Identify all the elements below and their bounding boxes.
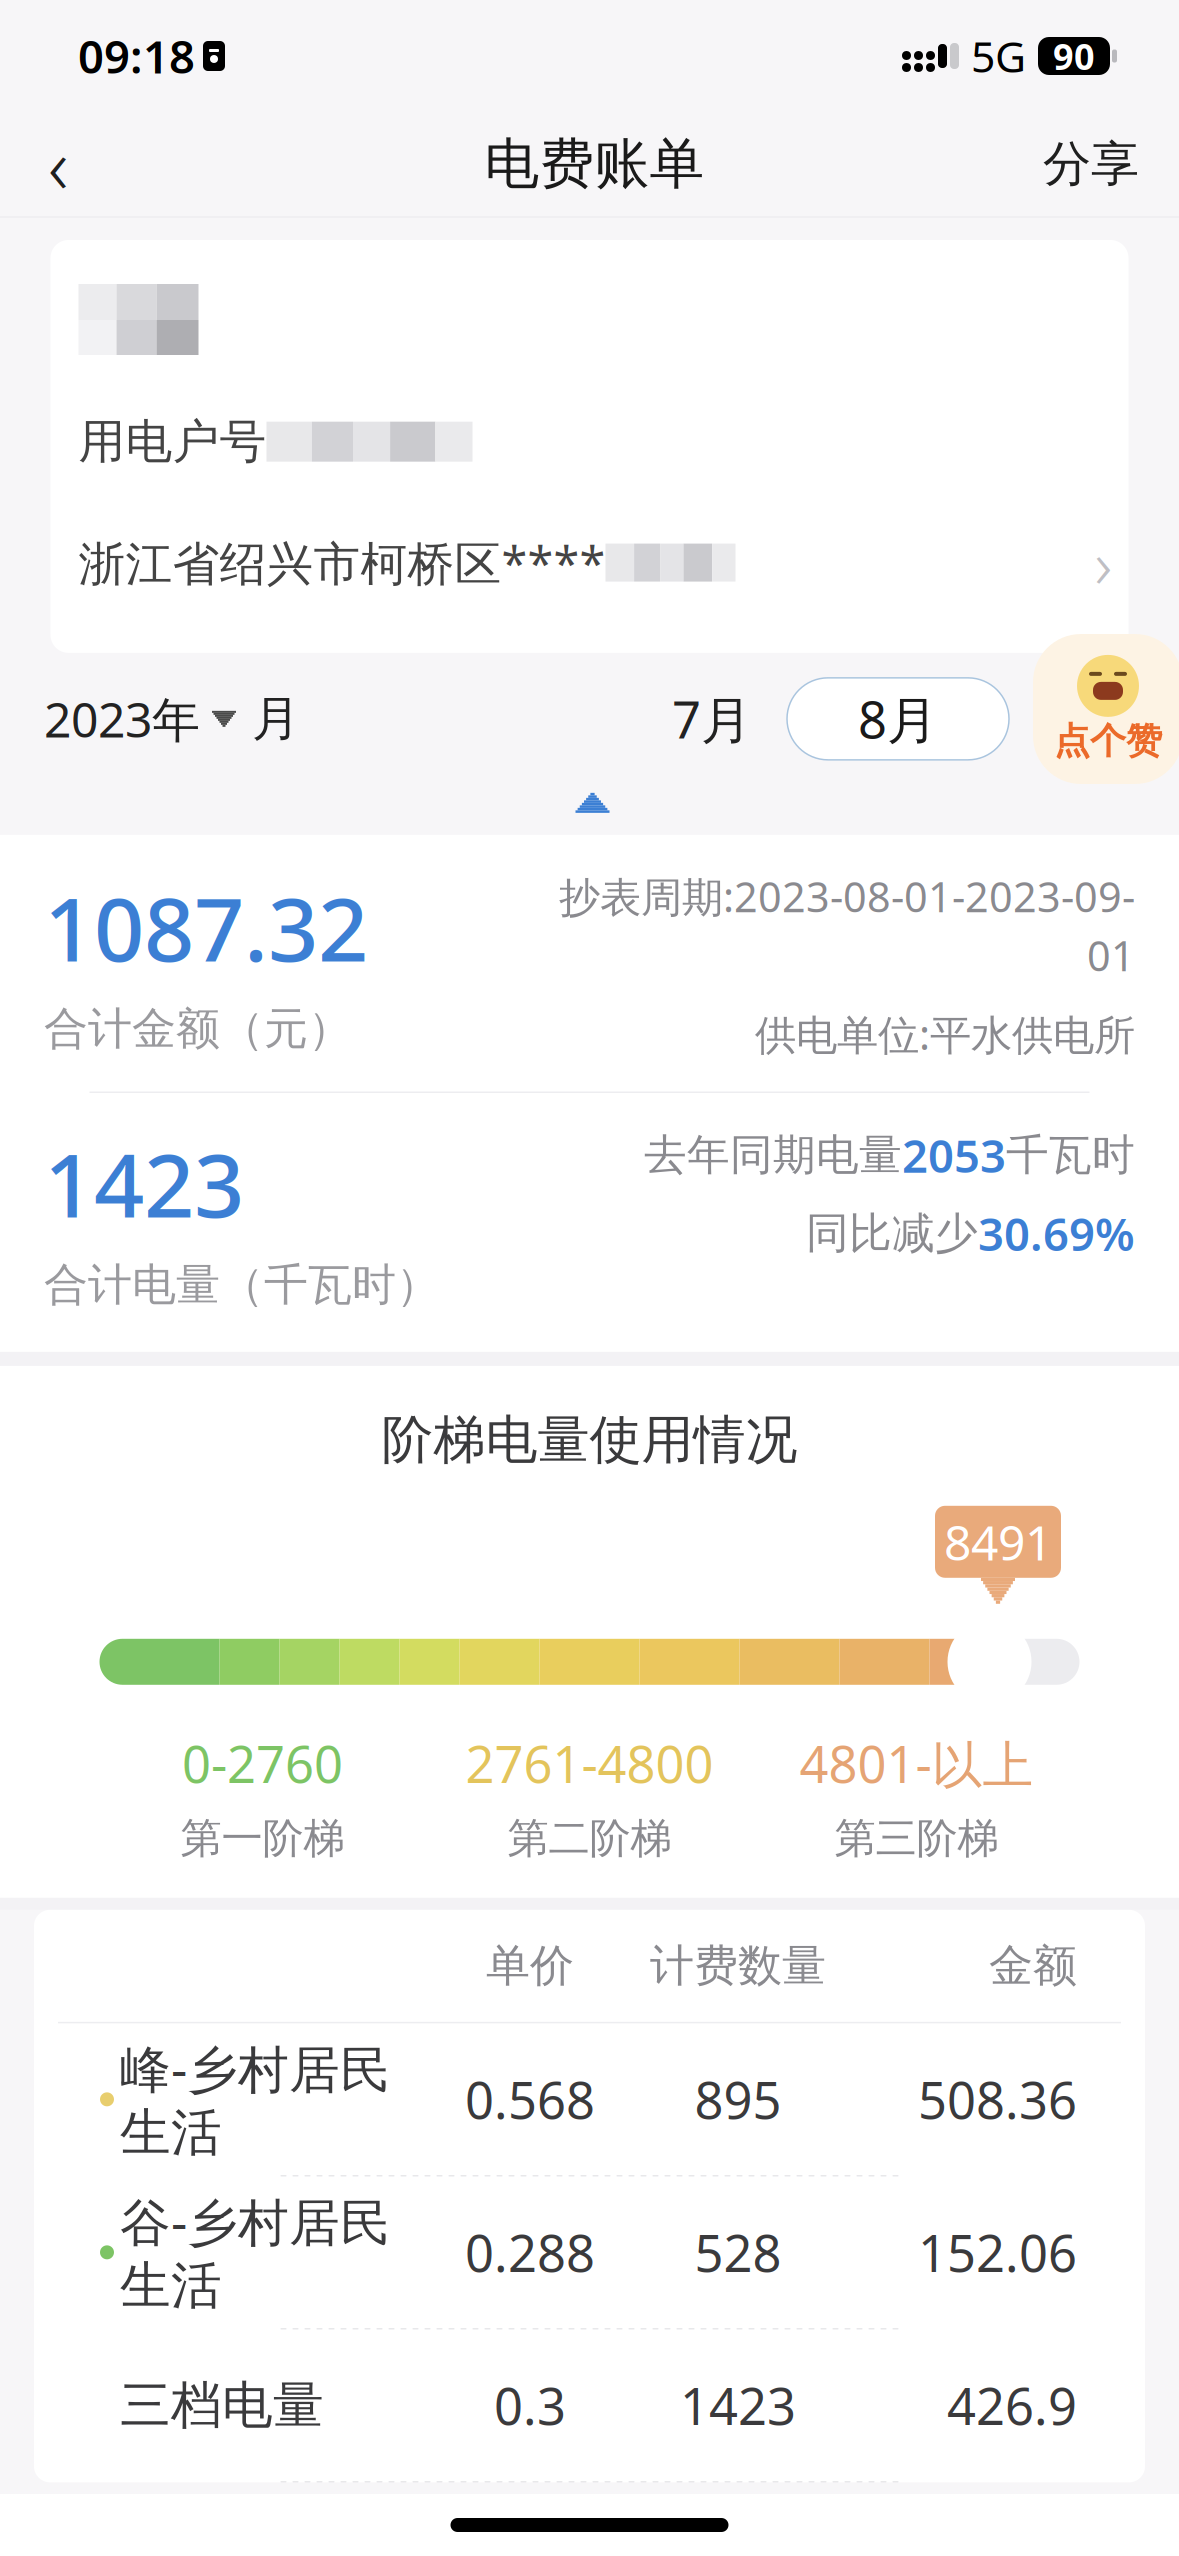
staticText: 第二阶梯 (507, 1813, 671, 1864)
staticText: 合计金额（元） (44, 1002, 352, 1056)
staticText: 8月 (858, 685, 938, 752)
staticText: 合计电量（千瓦时） (44, 1258, 440, 1312)
staticText: 第一阶梯 (180, 1813, 344, 1864)
staticText: 7月 (672, 685, 752, 752)
staticText: 5G (971, 28, 1026, 84)
staticText: 895 (694, 2066, 781, 2133)
staticText: › (1094, 518, 1112, 607)
staticText: 1087.32 (44, 869, 368, 986)
button[interactable]: 用电户号 (50, 240, 1128, 653)
staticText: 0-2760 (182, 1730, 343, 1797)
staticText: 阶梯电量使用情况 (381, 1408, 797, 1472)
staticText: 第三阶梯 (834, 1813, 998, 1864)
staticText: 426.9 (947, 2372, 1077, 2439)
button[interactable]: 8月 (787, 678, 1009, 760)
staticText: 508.36 (918, 2066, 1077, 2133)
staticText: 分享 (1043, 134, 1139, 193)
staticText: 供电单位:平水供电所 (755, 1007, 1135, 1061)
staticText: 三档电量 (120, 2374, 324, 2436)
staticText: 09:18 (78, 26, 195, 86)
staticText: 30.69% (978, 1203, 1135, 1263)
staticText: 峰-乡村居民生活 (120, 2035, 391, 2164)
staticText: 点个赞 (1054, 719, 1162, 763)
staticText: 2053 (902, 1125, 1006, 1185)
staticText: ‹ (48, 113, 68, 215)
button[interactable]: 9月 (1009, 678, 1159, 760)
staticText: 1423 (44, 1125, 244, 1242)
staticText: 用电户号 (78, 413, 266, 470)
staticText: 2023年 (44, 687, 200, 751)
staticText: 90 (1053, 32, 1095, 80)
staticText: 抄表周期:2023-08-01-2023-09- (559, 869, 1135, 924)
staticText: 千瓦时 (1006, 1129, 1135, 1181)
staticText: 月 (252, 689, 300, 748)
button[interactable]: 2023年 (0, 671, 254, 767)
staticText: 9月 (1044, 685, 1124, 752)
button[interactable]: Back (10, 116, 106, 212)
staticText: 01 (1087, 928, 1135, 983)
staticText: 0.568 (465, 2066, 595, 2133)
staticText: 谷-乡村居民生活 (120, 2188, 391, 2317)
button[interactable]: 点个赞 (1033, 634, 1179, 784)
staticText: 1423 (680, 2372, 796, 2439)
staticText: 同比减少 (806, 1207, 978, 1259)
staticText: 单价 (486, 1939, 574, 1993)
staticText: 528 (694, 2219, 781, 2286)
button[interactable]: 7月 (637, 678, 787, 760)
staticText: 0.3 (494, 2372, 566, 2439)
staticText: 0.288 (465, 2219, 595, 2286)
staticText: 计费数量 (650, 1939, 826, 1993)
staticText: 152.06 (918, 2219, 1077, 2286)
button[interactable]: 分享 (1025, 116, 1157, 212)
staticText: 金额 (989, 1939, 1077, 1993)
staticText: 去年同期电量 (644, 1129, 902, 1181)
staticText: 8491 (944, 1510, 1052, 1574)
staticText: 2761-4800 (465, 1730, 713, 1797)
staticText: 电费账单 (484, 130, 704, 197)
staticText: 浙江省绍兴市柯桥区**** (78, 532, 605, 594)
staticText: 4801-以上 (799, 1730, 1033, 1797)
